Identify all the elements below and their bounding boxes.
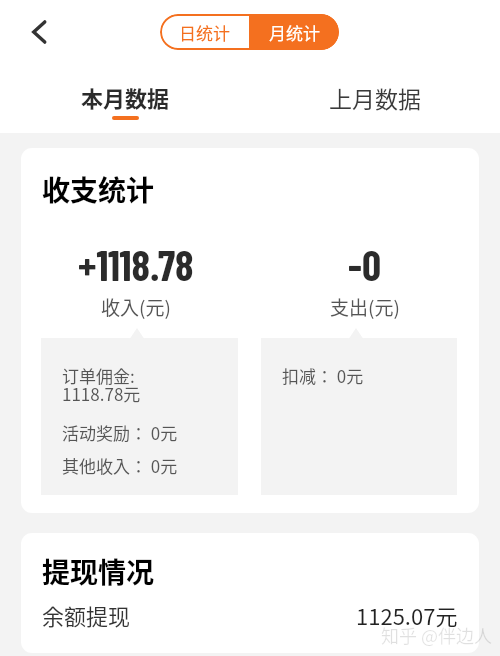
staticText: 活动奖励： 0元: [62, 420, 178, 445]
staticText: +1118.78: [78, 239, 194, 289]
button[interactable]: 余额提现: [21, 599, 479, 631]
staticText: 日统计: [179, 20, 230, 45]
staticText: 收支统计: [42, 169, 155, 210]
button[interactable]: 上月数据: [250, 81, 500, 114]
staticText: 余额提现: [42, 599, 131, 631]
staticText: 扣减： 0元: [282, 363, 364, 388]
staticText: 月统计: [269, 20, 320, 45]
staticText: 收入(元): [101, 293, 171, 321]
button[interactable]: Back: [17, 10, 61, 54]
staticText: 1125.07元: [356, 599, 458, 631]
staticText: 提现情况: [42, 551, 155, 592]
staticText: 1118.78元: [62, 381, 141, 406]
staticText: 上月数据: [329, 81, 421, 114]
staticText: 支出(元): [330, 293, 400, 321]
button[interactable]: 月统计: [249, 14, 339, 50]
staticText: 知乎 @伴边人: [381, 622, 493, 648]
staticText: 本月数据: [81, 81, 170, 113]
button[interactable]: 日统计: [160, 14, 249, 50]
staticText: 订单佣金:: [62, 363, 135, 388]
button[interactable]: 本月数据: [0, 81, 250, 120]
staticText: 其他收入： 0元: [62, 453, 178, 478]
staticText: -0: [348, 239, 381, 289]
